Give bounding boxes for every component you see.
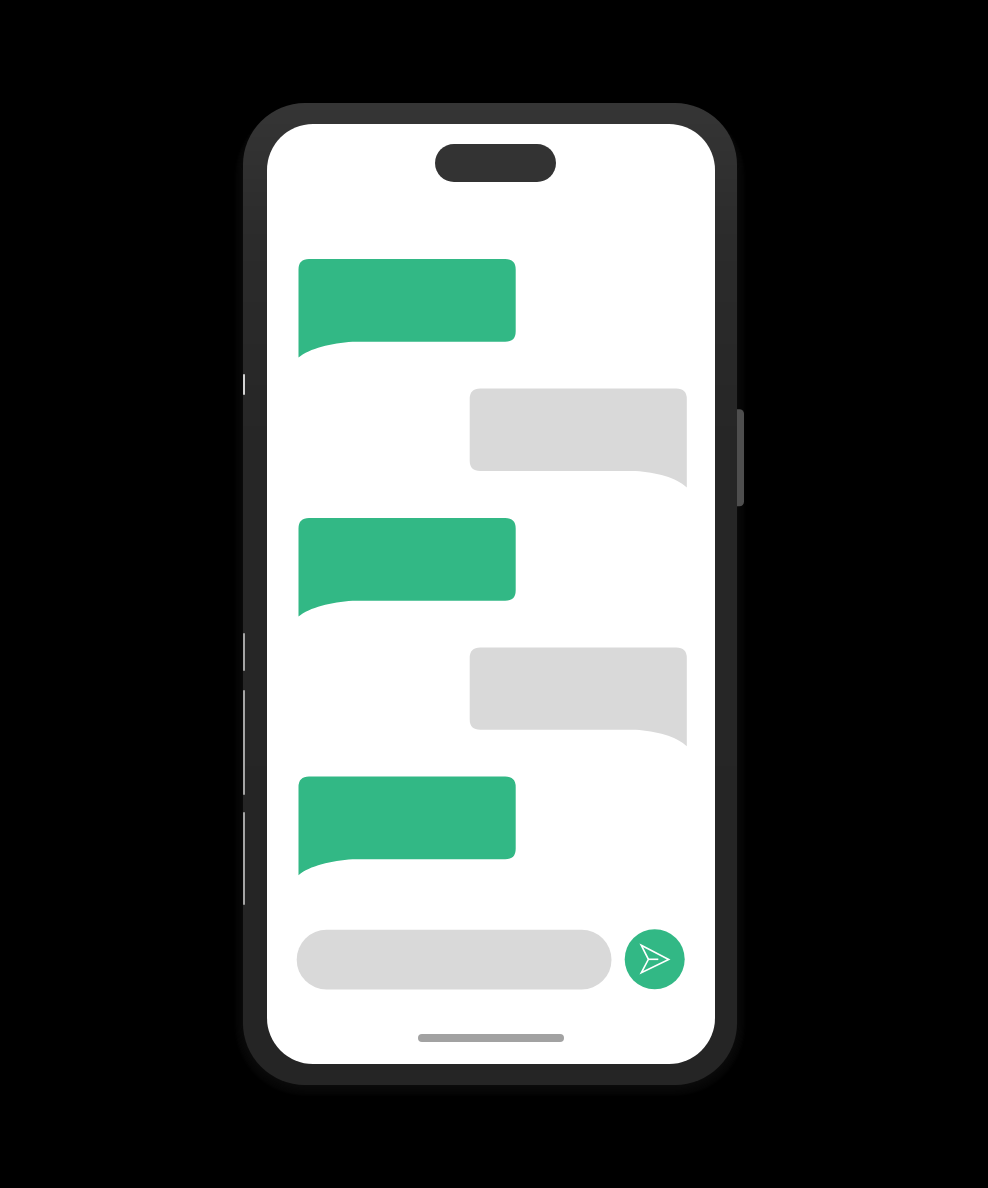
button[interactable]: Message input field <box>297 930 612 990</box>
button[interactable]: Received message <box>470 389 687 488</box>
button[interactable]: Sent message <box>299 259 516 358</box>
button[interactable]: Send <box>625 929 685 989</box>
button[interactable]: Received message <box>470 647 687 746</box>
button[interactable]: Sent message <box>299 777 516 876</box>
button[interactable]: Sent message <box>299 518 516 617</box>
